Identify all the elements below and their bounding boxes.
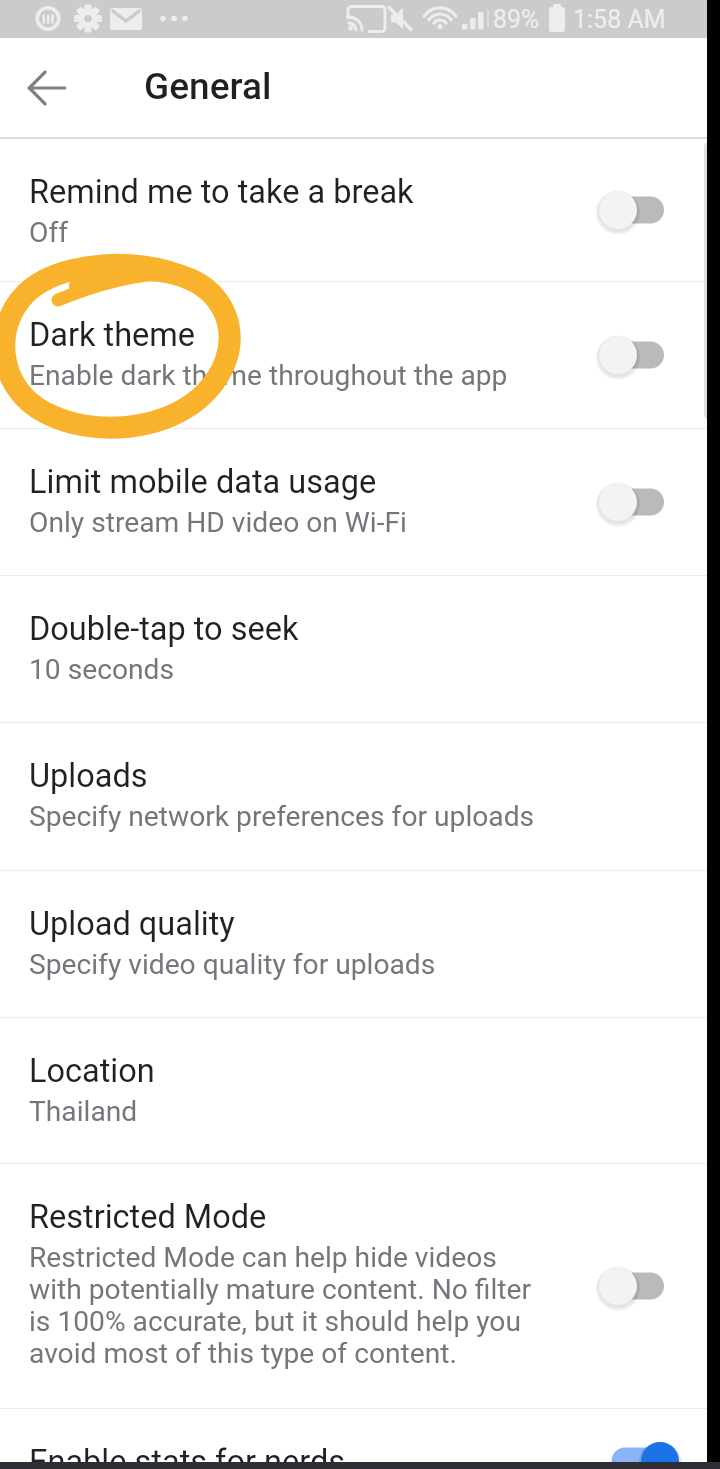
button[interactable]: Toggle off	[584, 324, 680, 386]
staticText: 10 seconds	[29, 653, 175, 686]
button[interactable]: Uploads	[0, 723, 720, 870]
staticText: Location	[29, 1052, 155, 1090]
staticText: Upload quality	[29, 905, 235, 943]
button[interactable]: Double-tap to seek	[0, 576, 720, 722]
button[interactable]: Limit mobile data usage	[0, 429, 720, 575]
button[interactable]: Remind me to take a break	[0, 139, 720, 281]
staticText: Remind me to take a break	[29, 173, 414, 211]
staticText: 1:58 AM	[573, 5, 666, 34]
staticText: Enable dark theme throughout the app	[29, 359, 508, 392]
staticText: Limit mobile data usage	[29, 463, 377, 501]
staticText: General	[144, 65, 272, 108]
button[interactable]: Restricted Mode	[0, 1164, 720, 1408]
staticText: Off	[29, 216, 68, 249]
button[interactable]: Toggle off	[584, 1255, 680, 1317]
staticText: Restricted Mode	[29, 1198, 267, 1236]
staticText: Specify video quality for uploads	[29, 948, 436, 981]
staticText: 89%	[493, 5, 540, 34]
button[interactable]: Back	[16, 57, 78, 119]
button[interactable]: Upload quality	[0, 871, 720, 1017]
staticText: Enable stats for nerds	[29, 1443, 346, 1469]
staticText: Restricted Mode can help hide videos wit…	[29, 1241, 532, 1370]
staticText: Thailand	[29, 1095, 138, 1128]
button[interactable]: Toggle off	[584, 179, 680, 241]
button[interactable]: Toggle off	[584, 471, 680, 533]
staticText: Specify network preferences for uploads	[29, 800, 535, 833]
staticText: Only stream HD video on Wi-Fi	[29, 506, 407, 539]
button[interactable]: Dark theme	[0, 282, 720, 428]
staticText: Dark theme	[29, 316, 196, 354]
button[interactable]: Enable stats for nerds	[0, 1409, 720, 1469]
staticText: Double-tap to seek	[29, 610, 299, 648]
staticText: Uploads	[29, 757, 148, 795]
button[interactable]: Location	[0, 1018, 720, 1163]
button[interactable]: Toggle on	[584, 1431, 680, 1469]
